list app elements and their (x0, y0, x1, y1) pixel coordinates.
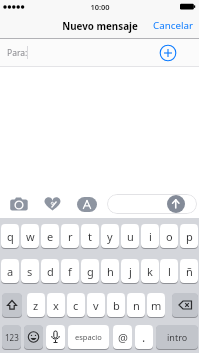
staticText: espacio (75, 332, 102, 342)
staticText: x (53, 298, 59, 313)
button[interactable]: p (180, 224, 198, 248)
button[interactable]: f (61, 259, 79, 283)
button[interactable] (24, 325, 43, 349)
button[interactable] (159, 44, 177, 62)
staticText: @ (118, 330, 128, 345)
button[interactable]: l (160, 259, 178, 283)
staticText: k (147, 264, 153, 279)
button[interactable]: z (27, 293, 45, 317)
button[interactable]: s (21, 259, 39, 283)
staticText: Cancelar (153, 19, 194, 32)
button[interactable]: h (101, 259, 119, 283)
staticText: intro (167, 331, 188, 343)
staticText: o (166, 229, 173, 244)
button[interactable]: e (41, 224, 59, 248)
button[interactable]: intro (156, 325, 198, 349)
button[interactable]: espacio (68, 325, 109, 349)
staticText: e (47, 229, 54, 244)
staticText: . (142, 329, 146, 345)
button[interactable] (107, 194, 197, 214)
button[interactable]: w (21, 224, 39, 248)
button[interactable]: @ (113, 325, 132, 349)
button[interactable] (46, 325, 65, 349)
staticText: h (107, 264, 114, 279)
button[interactable]: d (41, 259, 59, 283)
button[interactable]: q (1, 224, 19, 248)
button[interactable]: o (160, 224, 178, 248)
staticText: v (93, 298, 99, 313)
staticText: q (7, 229, 14, 244)
button[interactable]: m (147, 293, 165, 317)
button[interactable]: g (81, 259, 99, 283)
staticText: m (151, 298, 162, 313)
button[interactable]: b (107, 293, 125, 317)
staticText: Para: (7, 47, 28, 59)
staticText: a (7, 264, 14, 279)
button[interactable]: v (87, 293, 105, 317)
button[interactable]: 123 (2, 325, 21, 349)
button[interactable]: ñ (180, 259, 198, 283)
button[interactable]: n (127, 293, 145, 317)
staticText: d (47, 264, 54, 279)
staticText: i (149, 229, 152, 244)
staticText: p (186, 229, 193, 244)
staticText: l (168, 264, 171, 279)
button[interactable] (167, 195, 185, 213)
staticText: Nuevo mensaje (50, 20, 150, 36)
staticText: g (87, 264, 94, 279)
button[interactable]: u (121, 224, 139, 248)
button[interactable] (44, 196, 62, 212)
staticText: y (107, 229, 113, 244)
staticText: u (127, 229, 134, 244)
staticText: b (113, 298, 120, 313)
staticText: c (73, 298, 79, 313)
staticText: ñ (186, 264, 193, 279)
button[interactable]: t (81, 224, 99, 248)
button[interactable]: i (141, 224, 159, 248)
button[interactable] (0, 39, 199, 66)
button[interactable] (2, 293, 22, 317)
button[interactable] (9, 195, 30, 212)
button[interactable]: j (121, 259, 139, 283)
staticText: j (129, 264, 132, 279)
staticText: r (68, 229, 73, 244)
button[interactable]: x (47, 293, 65, 317)
button[interactable]: k (141, 259, 159, 283)
staticText: n (133, 298, 140, 313)
button[interactable]: a (1, 259, 19, 283)
staticText: f (68, 264, 72, 279)
button[interactable]: y (101, 224, 119, 248)
staticText: z (33, 298, 39, 313)
button[interactable] (172, 293, 198, 317)
button[interactable]: . (135, 325, 153, 349)
staticText: t (88, 229, 92, 244)
button[interactable] (77, 197, 97, 212)
staticText: s (27, 264, 33, 279)
button[interactable]: c (67, 293, 85, 317)
staticText: 10:00 (80, 2, 120, 14)
button[interactable]: r (61, 224, 79, 248)
staticText: w (26, 229, 35, 244)
staticText: 123 (5, 332, 19, 343)
button[interactable]: Cancelar (136, 16, 194, 34)
